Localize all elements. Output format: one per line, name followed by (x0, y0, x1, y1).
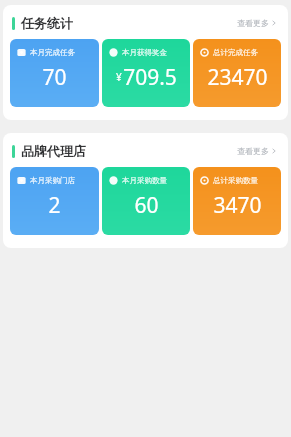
button[interactable]: 本月采购门店 (10, 167, 99, 235)
button[interactable]: 本月完成任务 (10, 39, 99, 107)
staticText: 查看更多 (237, 18, 269, 28)
staticText: 总计完成任务 (213, 48, 258, 57)
staticText: 709.5 (123, 63, 177, 92)
staticText: 70 (42, 63, 67, 92)
button[interactable]: 本月采购数量 (102, 167, 190, 235)
staticText: 23470 (207, 63, 268, 92)
staticText: 3470 (213, 191, 262, 220)
button[interactable]: 本月获得奖金 (102, 39, 190, 107)
staticText: ¥ (116, 70, 122, 84)
button[interactable]: 查看更多 (235, 16, 279, 30)
staticText: 2 (48, 191, 61, 220)
staticText: 总计采购数量 (213, 176, 258, 185)
staticText: 查看更多 (237, 146, 269, 156)
button[interactable]: 查看更多 (235, 144, 279, 158)
staticText: 本月获得奖金 (122, 48, 167, 57)
button[interactable]: 总计完成任务 (193, 39, 281, 107)
staticText: 60 (134, 191, 159, 220)
staticText: 品牌代理店 (21, 143, 86, 159)
button[interactable]: 总计采购数量 (193, 167, 281, 235)
staticText: 本月完成任务 (30, 48, 75, 57)
staticText: 本月采购数量 (122, 176, 167, 185)
staticText: 任务统计 (21, 15, 73, 31)
staticText: 本月采购门店 (30, 176, 75, 185)
other: 统计概览 (0, 0, 291, 437)
